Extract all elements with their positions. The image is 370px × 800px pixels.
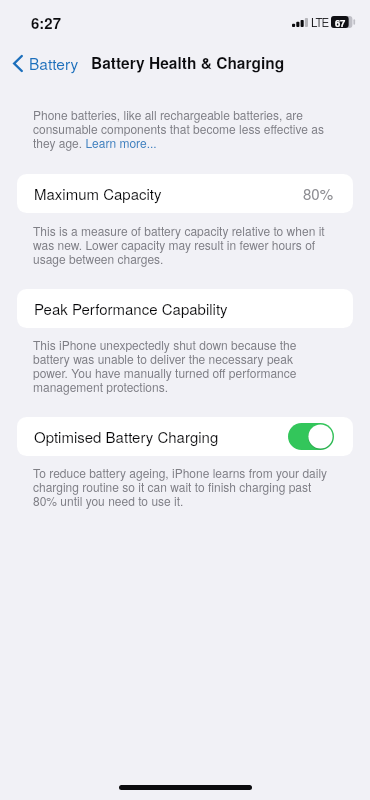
button[interactable]: Maximum Capacity <box>17 174 353 213</box>
staticText: This is a measure of battery capacity re… <box>33 222 331 268</box>
staticText: LTE <box>311 14 329 30</box>
staticText: To reduce battery ageing, iPhone learns … <box>33 464 331 510</box>
staticText: Peak Performance Capability <box>34 298 228 319</box>
staticText: Optimised Battery Charging <box>34 426 219 447</box>
staticText: 6:27 <box>31 12 62 33</box>
button[interactable]: Optimised Battery Charging <box>17 417 353 456</box>
button[interactable]: Optimised Battery Charging toggle <box>288 423 334 450</box>
staticText: Maximum Capacity <box>34 183 162 204</box>
staticText: Phone batteries, like all rechargeable b… <box>33 106 331 152</box>
staticText: 67 <box>335 16 346 28</box>
button[interactable]: Peak Performance Capability <box>17 289 353 328</box>
button[interactable]: Back to Battery <box>11 48 81 78</box>
staticText: Battery <box>29 52 79 74</box>
staticText: Battery Health & Charging <box>91 52 285 74</box>
staticText: This iPhone unexpectedly shut down becau… <box>33 336 331 396</box>
staticText: 80% <box>303 183 334 204</box>
